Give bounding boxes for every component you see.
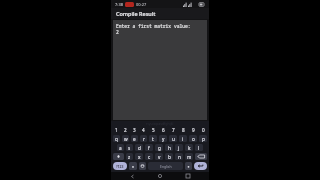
staticText: 3: [133, 127, 136, 133]
button[interactable]: g: [155, 144, 163, 151]
staticText: e: [133, 136, 136, 142]
staticText: a: [119, 145, 122, 151]
staticText: j: [178, 145, 180, 151]
button[interactable]: v: [155, 153, 163, 160]
button[interactable]: ?123: [113, 162, 127, 170]
staticText: u: [172, 136, 175, 142]
button[interactable]: d: [135, 144, 143, 151]
staticText: c: [148, 154, 151, 160]
button[interactable]: h: [165, 144, 173, 151]
button[interactable]: i: [179, 135, 187, 142]
staticText: f: [148, 145, 150, 151]
button[interactable]: k: [185, 144, 193, 151]
staticText: t: [152, 136, 154, 142]
button[interactable]: 2: [122, 127, 129, 133]
staticText: 9: [192, 127, 195, 133]
button[interactable]: b: [165, 153, 173, 160]
button[interactable]: Comma: [129, 162, 137, 170]
button[interactable]: n: [175, 153, 183, 160]
button[interactable]: Recents: [181, 172, 195, 180]
staticText: 8: [182, 127, 185, 133]
button[interactable]: a: [117, 144, 124, 151]
staticText: m: [187, 154, 192, 160]
button[interactable]: Home: [153, 172, 167, 180]
button[interactable]: Backspace: [195, 153, 207, 160]
staticText: 7: [172, 127, 175, 133]
staticText: 2: [124, 127, 127, 133]
staticText: s: [128, 145, 131, 151]
staticText: ?123: [116, 164, 124, 169]
button[interactable]: 4: [140, 127, 147, 133]
staticText: g: [158, 145, 161, 151]
button[interactable]: s: [126, 144, 133, 151]
button[interactable]: Enter a first matrix value:: [113, 20, 207, 120]
staticText: 1: [115, 127, 118, 133]
staticText: b: [168, 154, 171, 160]
button[interactable]: 3: [131, 127, 138, 133]
staticText: i: [182, 136, 184, 142]
staticText: w: [124, 136, 128, 142]
staticText: n: [178, 154, 181, 160]
button[interactable]: j: [175, 144, 183, 151]
staticText: Compile Result: [116, 10, 156, 17]
button[interactable]: Period: [185, 162, 192, 170]
button[interactable]: m: [185, 153, 193, 160]
staticText: z: [128, 154, 131, 160]
button[interactable]: Enter: [194, 162, 207, 170]
button[interactable]: z: [126, 153, 133, 160]
button[interactable]: q: [113, 135, 120, 142]
staticText: 2: [116, 29, 119, 35]
button[interactable]: e: [131, 135, 138, 142]
button[interactable]: f: [145, 144, 153, 151]
button[interactable]: w: [122, 135, 129, 142]
staticText: x: [138, 154, 141, 160]
button[interactable]: 1: [113, 127, 120, 133]
staticText: q: [115, 136, 118, 142]
button[interactable]: Compile Result: [111, 8, 209, 19]
staticText: 5: [152, 127, 155, 133]
staticText: 4: [142, 127, 145, 133]
button[interactable]: 5: [149, 127, 157, 133]
staticText: r: [143, 136, 145, 142]
button[interactable]: Emoji: [139, 162, 146, 170]
button[interactable]: x: [135, 153, 143, 160]
button[interactable]: l: [195, 144, 203, 151]
staticText: 0: [202, 127, 205, 133]
button[interactable]: c: [145, 153, 153, 160]
button[interactable]: Back: [125, 172, 139, 180]
button[interactable]: English: [148, 162, 183, 170]
button[interactable]: 8: [179, 127, 187, 133]
button[interactable]: 0: [199, 127, 207, 133]
staticText: d: [138, 145, 141, 151]
staticText: English: [160, 164, 172, 169]
staticText: k: [188, 145, 191, 151]
staticText: o: [192, 136, 195, 142]
staticText: 00:27: [136, 2, 147, 7]
staticText: Enter a first matrix value:: [116, 23, 191, 29]
button[interactable]: 6: [159, 127, 167, 133]
button[interactable]: t: [149, 135, 157, 142]
staticText: p: [202, 136, 205, 142]
staticText: 7:38: [115, 2, 123, 7]
staticText: rtyuiopasdfghjkl: [146, 121, 174, 126]
button[interactable]: u: [169, 135, 177, 142]
staticText: h: [168, 145, 171, 151]
staticText: y: [162, 136, 165, 142]
staticText: l: [198, 145, 200, 151]
button[interactable]: y: [159, 135, 167, 142]
button[interactable]: p: [199, 135, 207, 142]
staticText: 6: [162, 127, 165, 133]
button[interactable]: o: [189, 135, 197, 142]
button[interactable]: Shift: [113, 153, 124, 160]
button[interactable]: r: [140, 135, 147, 142]
staticText: v: [158, 154, 161, 160]
button[interactable]: 9: [189, 127, 197, 133]
button[interactable]: 7: [169, 127, 177, 133]
